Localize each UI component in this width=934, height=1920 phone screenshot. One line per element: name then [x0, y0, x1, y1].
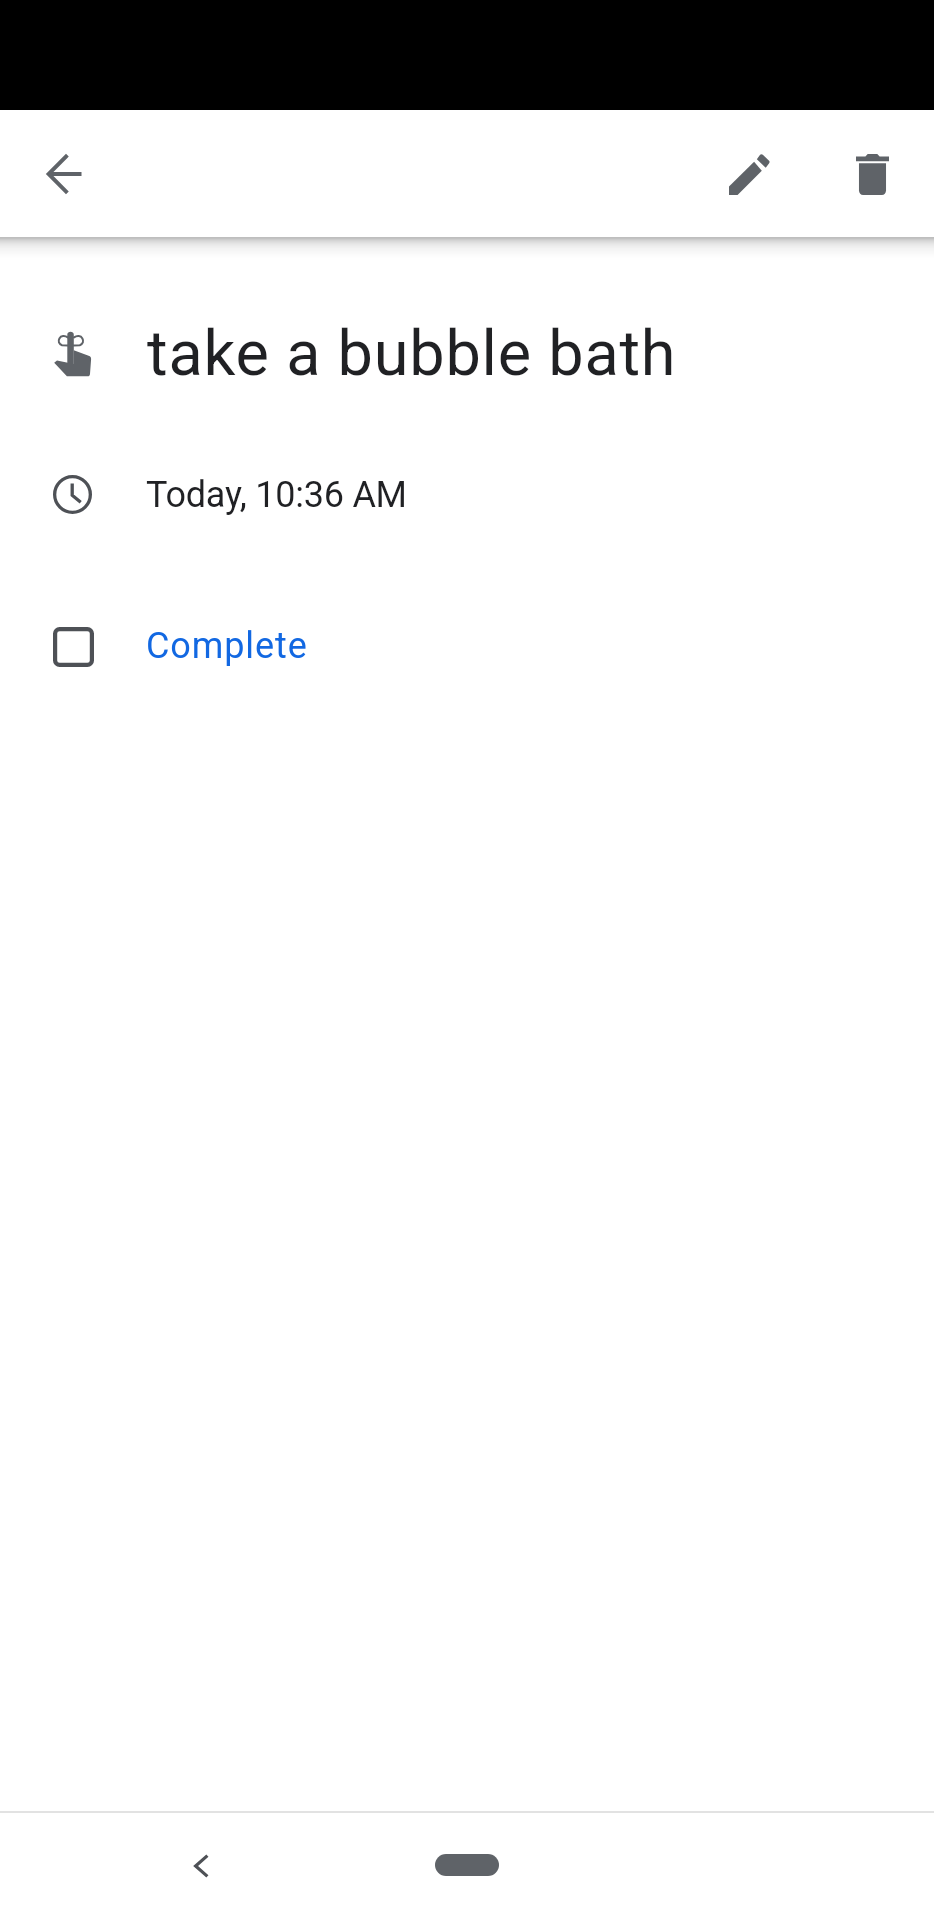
- staticText: take a bubble bath: [147, 317, 677, 391]
- staticText: Complete: [146, 625, 308, 667]
- button[interactable]: Home: [435, 1854, 499, 1876]
- button[interactable]: Delete: [824, 126, 920, 222]
- button[interactable]: Today, 10:36 AM: [0, 448, 934, 542]
- button[interactable]: Complete: [0, 600, 934, 694]
- button[interactable]: Back: [159, 1824, 243, 1908]
- staticText: Today, 10:36 AM: [146, 474, 407, 516]
- button[interactable]: Back: [16, 126, 112, 222]
- button[interactable]: take a bubble bath: [0, 290, 934, 418]
- button[interactable]: Edit: [701, 126, 797, 222]
